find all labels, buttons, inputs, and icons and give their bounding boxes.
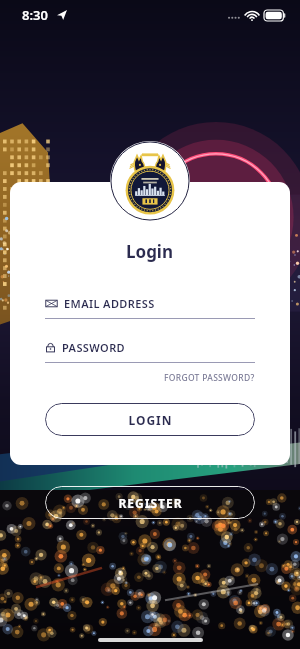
staticText: EMAIL ADDRESS: [64, 296, 155, 311]
staticText: REGISTER: [118, 495, 183, 511]
button[interactable]: EMAIL ADDRESS: [45, 296, 255, 319]
staticText: PASSWORD: [62, 340, 126, 355]
button[interactable]: PASSWORD: [45, 340, 255, 363]
button[interactable]: LOGIN: [45, 403, 255, 436]
staticText: 8:30: [22, 6, 48, 24]
staticText: LOGIN: [128, 412, 173, 428]
button[interactable]: FORGOT PASSWORD?: [164, 371, 255, 385]
button[interactable]: REGISTER: [45, 486, 255, 519]
staticText: Login: [126, 240, 174, 263]
